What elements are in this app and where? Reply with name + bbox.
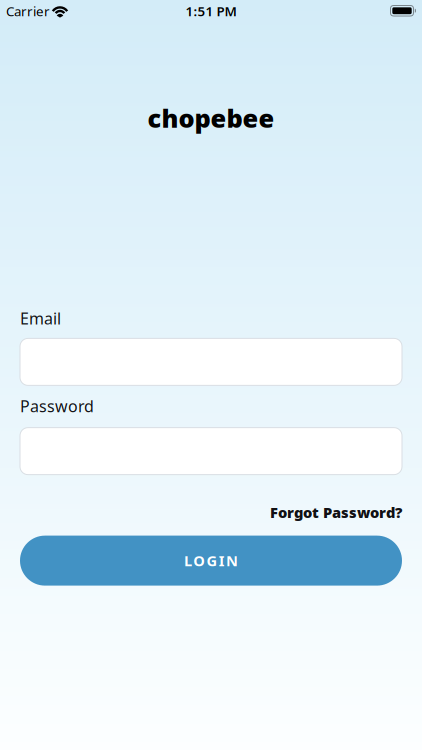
- button[interactable]: Forgot Password?: [270, 503, 402, 522]
- button[interactable]: LOGIN: [20, 536, 402, 586]
- staticText: 1:51 PM: [185, 2, 236, 20]
- staticText: LOGIN: [184, 551, 238, 570]
- staticText: Email: [20, 308, 61, 329]
- staticText: Carrier: [6, 2, 50, 20]
- staticText: Password: [20, 395, 94, 417]
- staticText: Forgot Password?: [270, 503, 402, 522]
- staticText: chopebee: [147, 101, 274, 135]
